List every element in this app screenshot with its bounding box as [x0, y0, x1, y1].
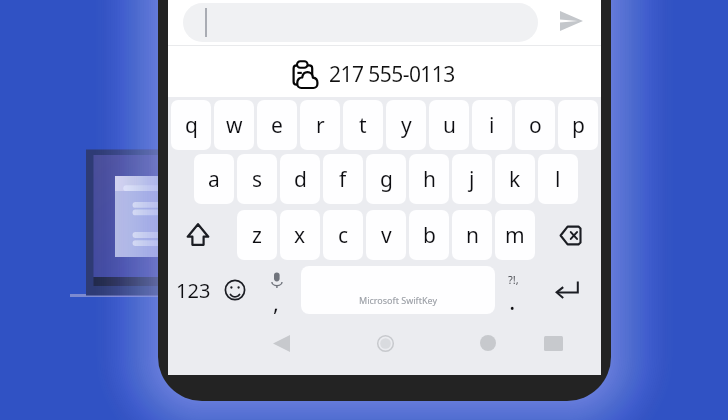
staticText: t — [359, 111, 367, 140]
button[interactable]: j — [452, 154, 492, 204]
button[interactable]: Emoji — [216, 271, 253, 309]
button[interactable]: Assistant — [470, 325, 506, 361]
button[interactable]: t — [343, 100, 383, 150]
button[interactable]: v — [366, 210, 406, 260]
button[interactable]: p — [558, 100, 598, 150]
button[interactable]: b — [409, 210, 449, 260]
button[interactable] — [183, 3, 538, 42]
staticText: h — [423, 165, 436, 194]
staticText: j — [469, 165, 475, 194]
button[interactable]: u — [429, 100, 469, 150]
button[interactable]: f — [323, 154, 363, 204]
staticText: l — [555, 165, 561, 194]
staticText: n — [466, 221, 479, 250]
button[interactable]: a — [194, 154, 234, 204]
staticText: x — [294, 221, 306, 250]
button[interactable]: Home — [367, 325, 403, 361]
button[interactable]: Recents — [535, 325, 571, 361]
staticText: g — [380, 165, 393, 194]
button[interactable]: o — [515, 100, 555, 150]
staticText: v — [381, 221, 392, 250]
button[interactable]: w — [214, 100, 254, 150]
staticText: w — [226, 111, 243, 140]
button[interactable]: x — [280, 210, 320, 260]
button[interactable]: d — [280, 154, 320, 204]
button[interactable]: Shift — [186, 222, 211, 247]
button[interactable]: 217 555-0113 — [168, 46, 601, 96]
button[interactable]: z — [237, 210, 277, 260]
button[interactable]: m — [495, 210, 535, 260]
staticText: p — [572, 111, 585, 140]
staticText: c — [338, 221, 349, 250]
staticText: e — [271, 111, 283, 140]
button[interactable]: s — [237, 154, 277, 204]
button[interactable]: Back — [262, 325, 300, 361]
staticText: , — [273, 287, 279, 317]
staticText: 217 555-0113 — [329, 60, 455, 89]
button[interactable]: r — [300, 100, 340, 150]
button[interactable]: q — [171, 100, 211, 150]
button[interactable]: Voice input — [258, 265, 296, 313]
staticText: z — [252, 221, 262, 250]
staticText: ?!, — [508, 272, 519, 287]
staticText: u — [443, 111, 456, 140]
button[interactable]: Backspace — [559, 225, 584, 246]
staticText: . — [509, 284, 516, 317]
staticText: k — [509, 165, 521, 194]
button[interactable]: h — [409, 154, 449, 204]
staticText: o — [529, 111, 542, 140]
button[interactable]: Enter — [552, 275, 586, 305]
staticText: Microsoft SwiftKey — [359, 294, 437, 306]
button[interactable]: i — [472, 100, 512, 150]
button[interactable]: n — [452, 210, 492, 260]
staticText: y — [401, 111, 412, 140]
staticText: m — [505, 221, 525, 250]
staticText: 123 — [176, 277, 211, 304]
staticText: f — [339, 165, 347, 194]
button[interactable]: k — [495, 154, 535, 204]
button[interactable]: Microsoft SwiftKey — [301, 266, 495, 314]
staticText: s — [252, 165, 263, 194]
button[interactable]: 123 — [171, 265, 215, 313]
button[interactable]: e — [257, 100, 297, 150]
staticText: q — [185, 111, 198, 140]
staticText: r — [316, 111, 325, 140]
button[interactable]: l — [538, 154, 578, 204]
staticText: d — [294, 165, 307, 194]
button[interactable]: Send — [548, 0, 594, 44]
button[interactable]: c — [323, 210, 363, 260]
button[interactable]: y — [386, 100, 426, 150]
staticText: a — [208, 165, 220, 194]
staticText: i — [489, 111, 495, 140]
button[interactable]: ?!, — [498, 265, 538, 313]
button[interactable]: g — [366, 154, 406, 204]
staticText: b — [423, 221, 436, 250]
